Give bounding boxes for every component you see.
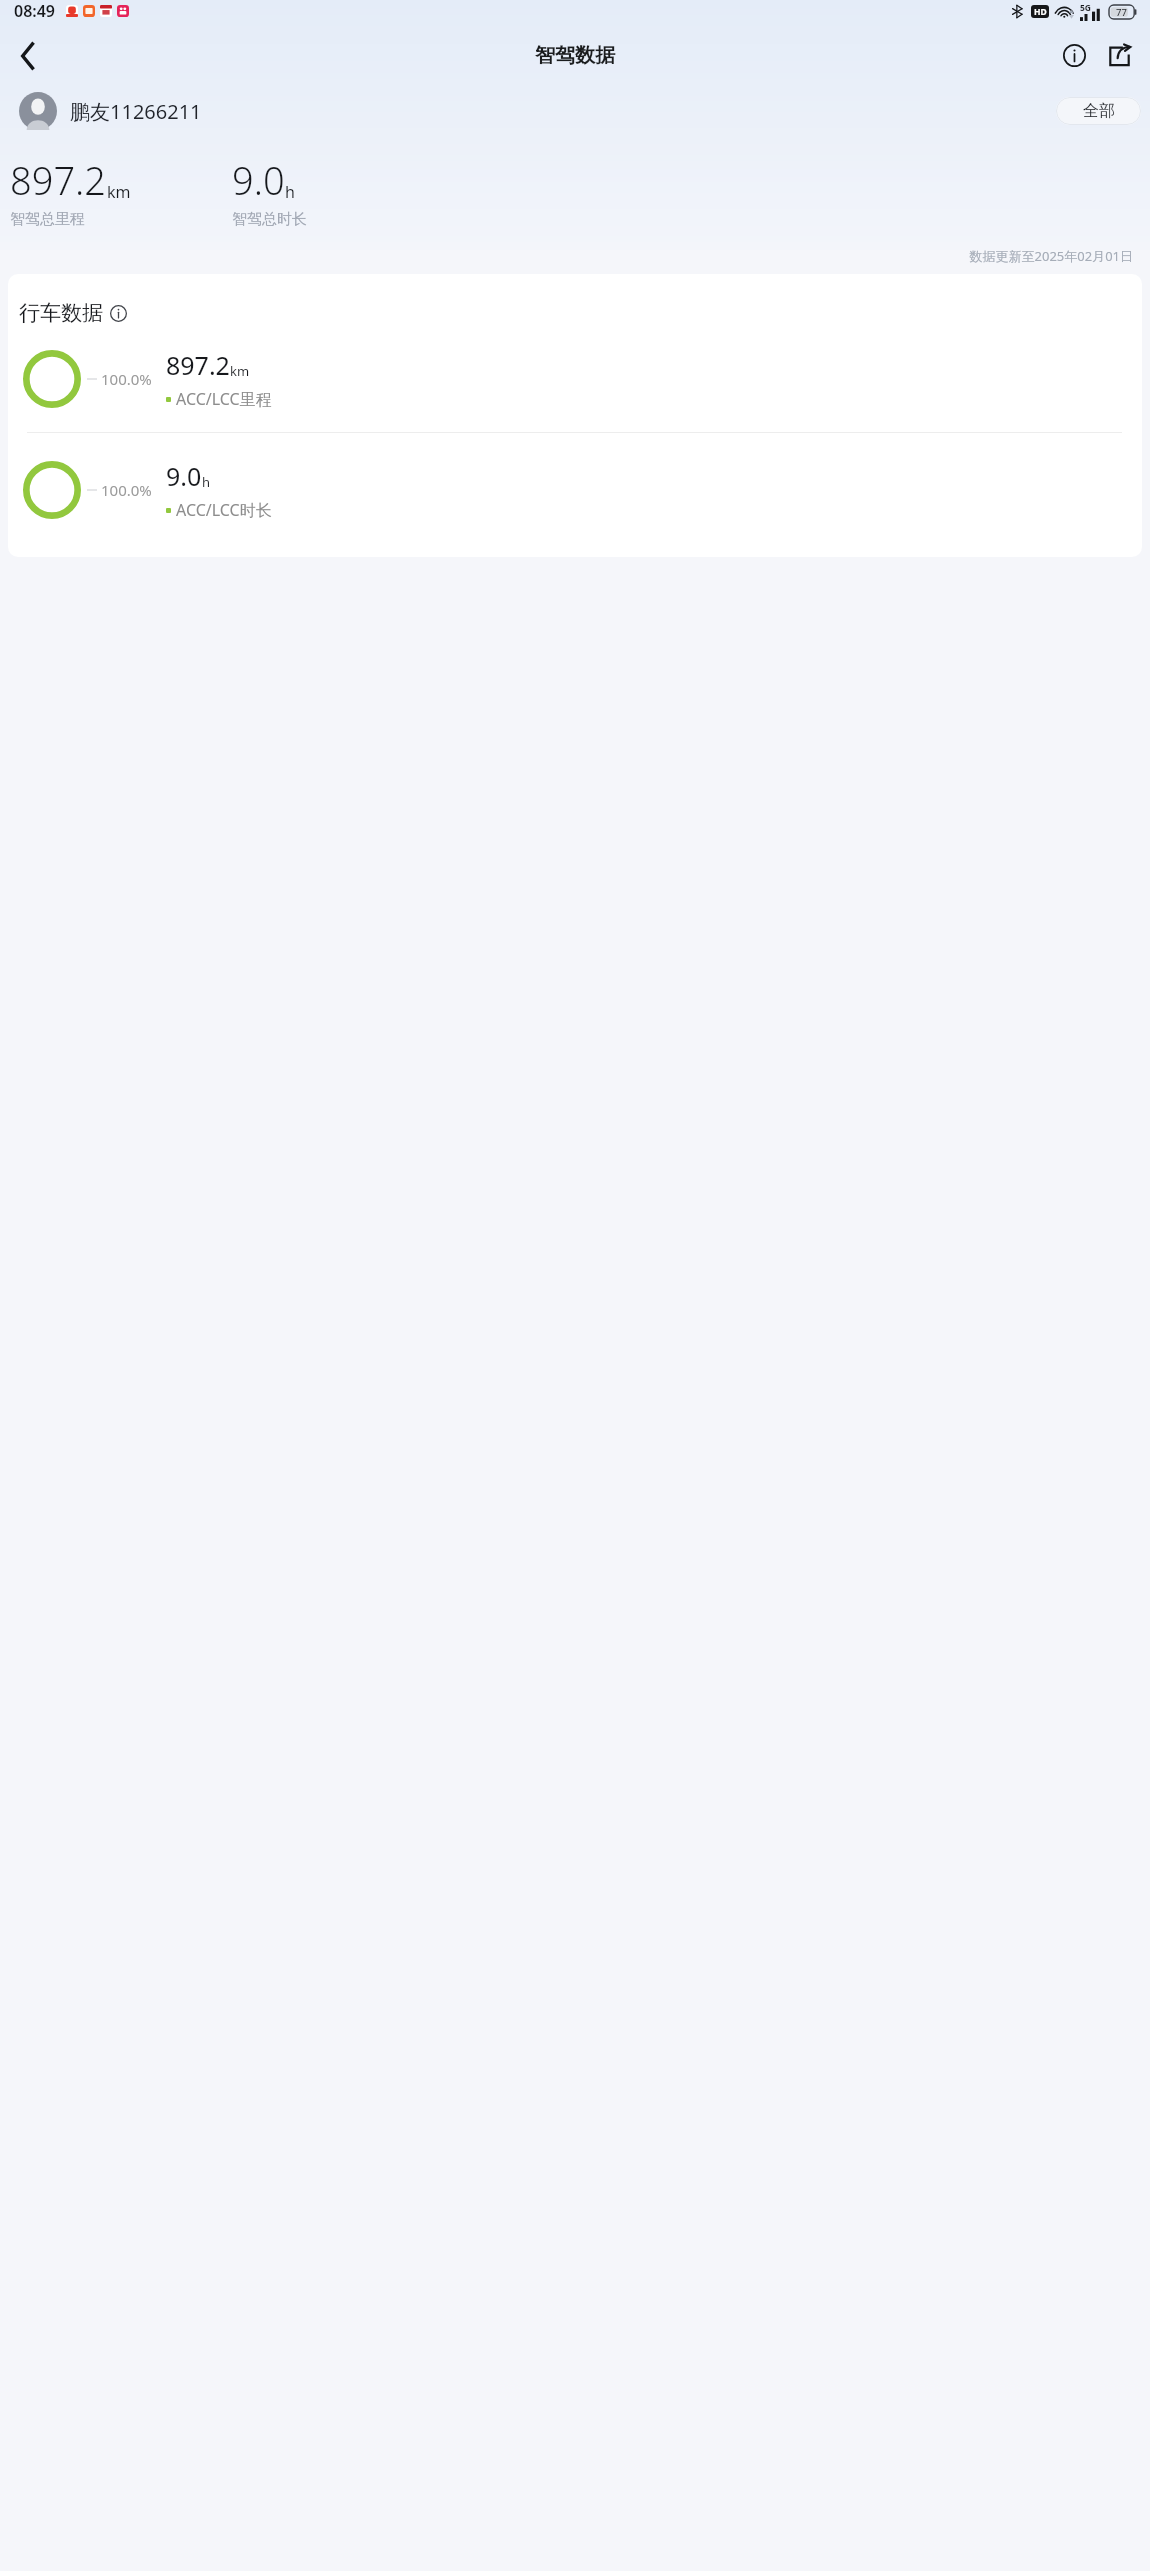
staticText: 智驾总里程 (10, 210, 85, 229)
staticText: 智驾总时长 (232, 210, 307, 229)
button[interactable]: 全部 (1056, 97, 1141, 125)
staticText: HD (1034, 6, 1047, 18)
staticText: 77 (1116, 6, 1127, 19)
staticText: km (230, 362, 250, 380)
button[interactable]: 行车数据 (19, 300, 127, 326)
staticText: 08:49 (14, 0, 56, 22)
staticText: 5G (1080, 2, 1092, 14)
button[interactable]: 鹏友11266211 (19, 92, 202, 130)
staticText: h (285, 181, 295, 203)
staticText: 897.2 (166, 348, 230, 382)
staticText: 行车数据 (19, 300, 103, 326)
staticText: 100.0% (101, 480, 152, 500)
staticText: 100.0% (101, 369, 152, 389)
staticText: km (107, 181, 131, 203)
staticText: ACC/LCC里程 (176, 388, 272, 410)
staticText: 数据更新至2025年02月01日 (969, 247, 1133, 265)
staticText: 智驾数据 (535, 43, 615, 68)
staticText: 鹏友11266211 (70, 98, 202, 125)
button[interactable]: Info (1053, 37, 1095, 74)
button[interactable]: Back (6, 37, 50, 74)
staticText: h (202, 473, 211, 491)
button[interactable]: Share (1098, 37, 1140, 74)
staticText: 897.2 (10, 154, 107, 206)
staticText: 9.0 (232, 154, 285, 206)
staticText: 全部 (1083, 101, 1115, 121)
staticText: ACC/LCC时长 (176, 499, 272, 521)
staticText: 9.0 (166, 459, 202, 493)
